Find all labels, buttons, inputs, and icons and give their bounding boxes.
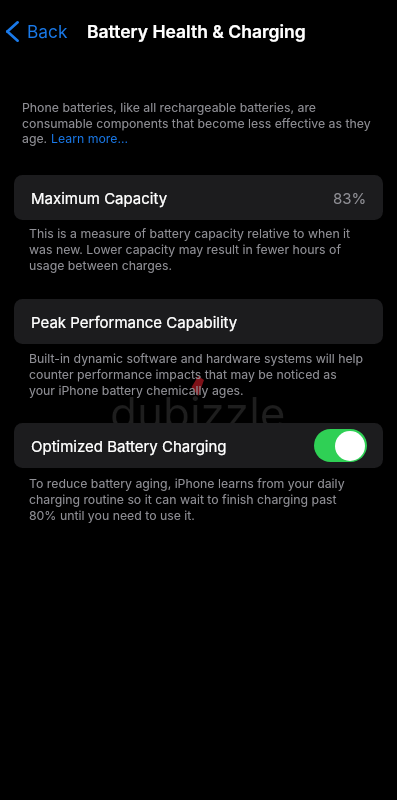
staticText: dubizzle [110,386,286,439]
staticText: Phone batteries, like all rechargeable b… [22,100,371,147]
staticText: 83% [333,189,367,207]
staticText: This is a measure of battery capacity re… [29,226,351,273]
staticText: age. [22,131,51,146]
staticText: To reduce battery aging, iPhone learns f… [29,476,345,523]
staticText: Phone batteries, like all rechargeable b… [22,100,371,131]
button[interactable]: Back [2,13,74,50]
staticText: Peak Performance Capability [31,313,238,331]
staticText: Maximum Capacity [31,189,168,207]
staticText: Battery Health & Charging [87,21,306,42]
button[interactable]: Optimized Battery Charging [14,423,383,468]
button[interactable]: Maximum Capacity [14,175,383,220]
button[interactable]: Learn more... [51,131,129,146]
button[interactable]: Optimized Battery Charging toggle, on [314,429,367,462]
staticText: Back [27,21,68,42]
button[interactable]: Peak Performance Capability [14,299,383,344]
staticText: Built-in dynamic software and hardware s… [29,351,364,398]
staticText: Optimized Battery Charging [31,437,227,455]
